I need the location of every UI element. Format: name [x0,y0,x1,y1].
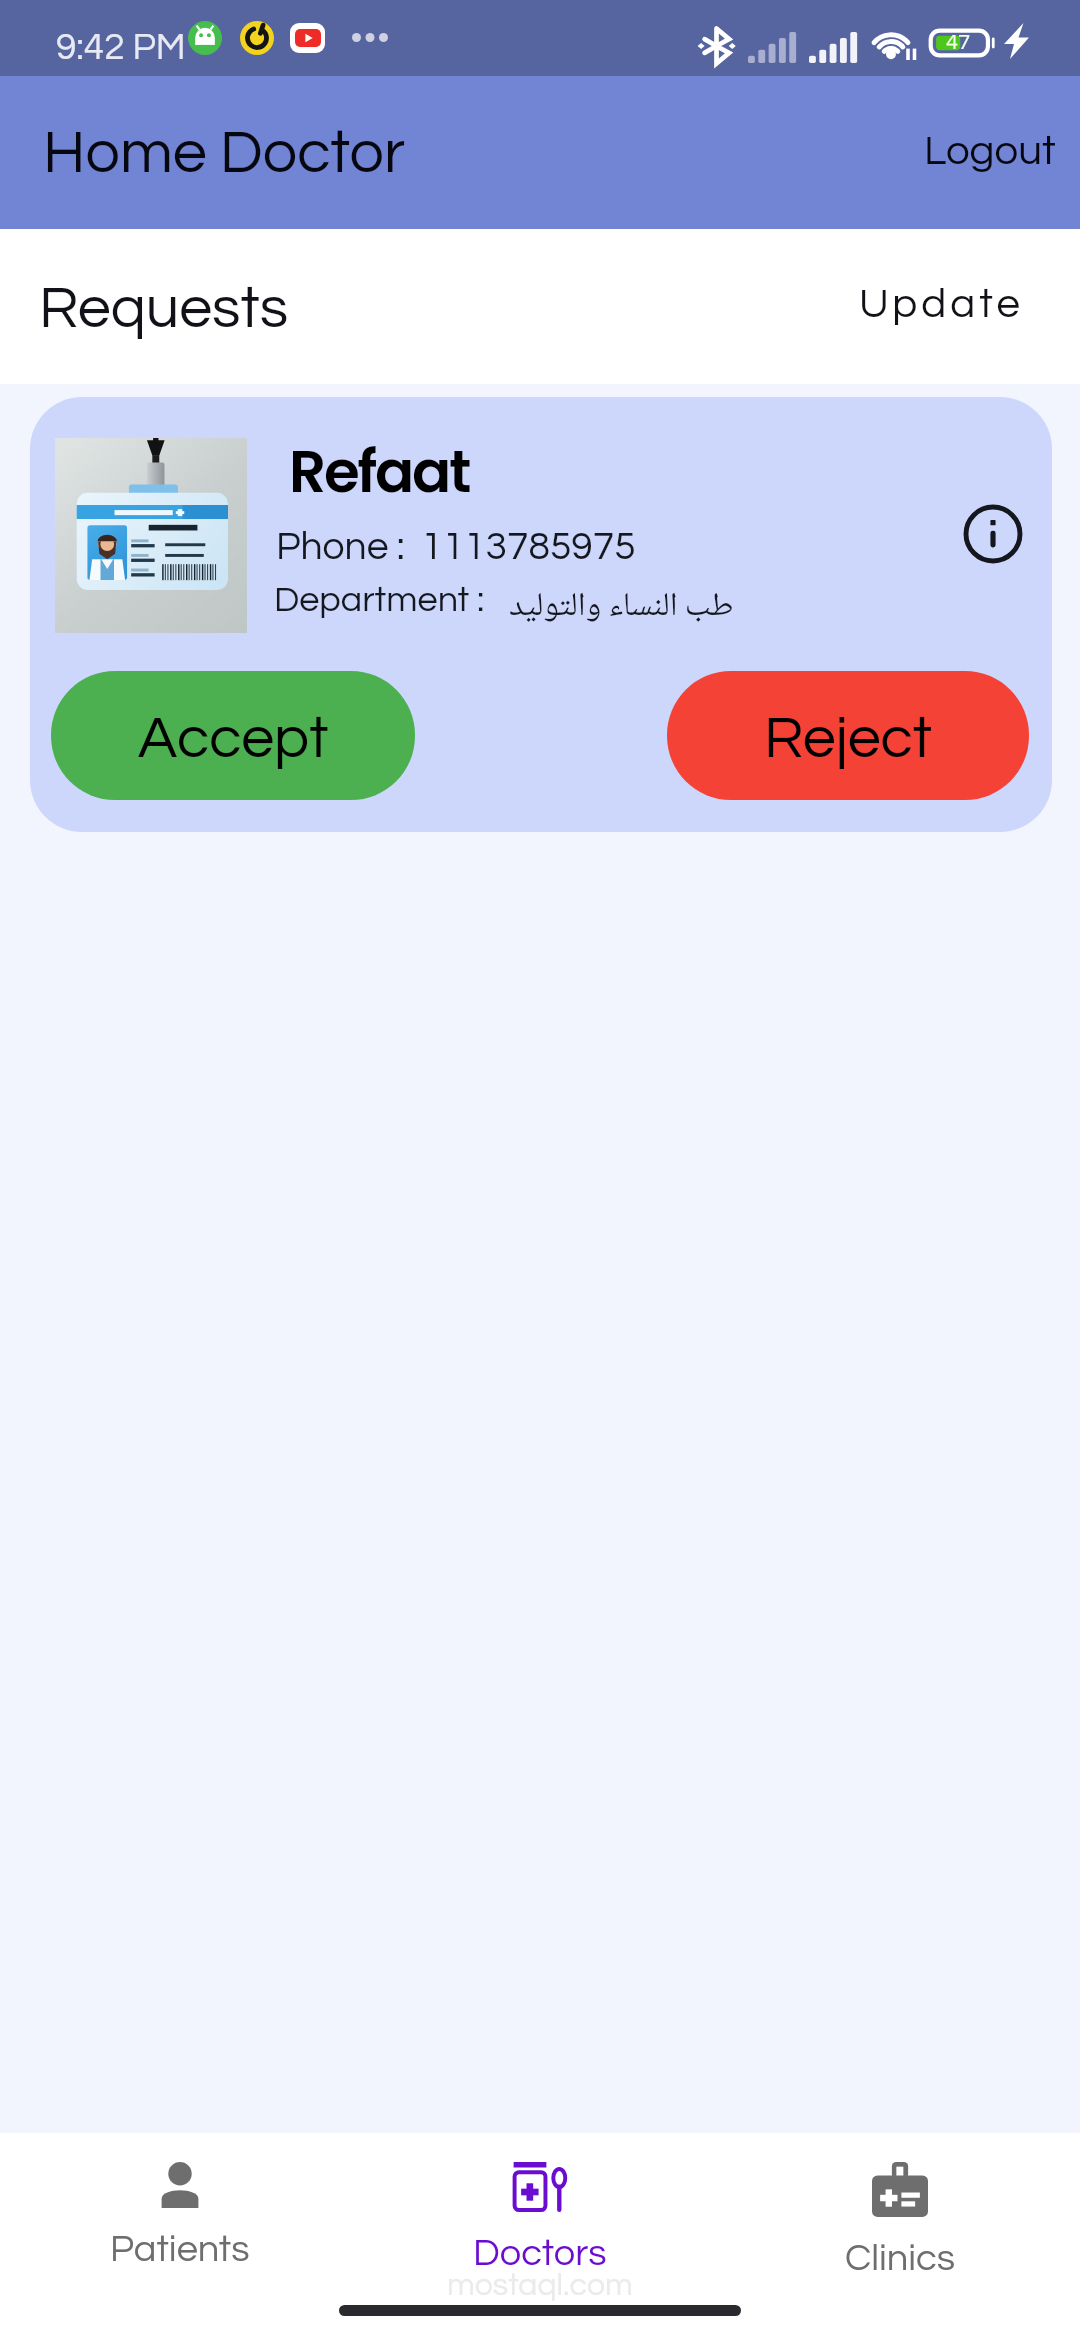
button[interactable]: Patients [0,2133,360,2269]
staticText: Phone : 1113785975 [276,527,636,567]
button[interactable]: Update [837,267,1046,342]
button[interactable]: Home Doctor [21,108,428,199]
staticText: 47 [946,31,971,54]
button[interactable]: Reject [667,671,1029,800]
staticText: Clinics [845,2239,956,2278]
staticText: Requests [39,279,289,340]
staticText: Logout [924,130,1056,173]
staticText: Patients [110,2230,250,2269]
button[interactable]: Doctors [360,2133,720,2273]
staticText: 9:42 PM [56,29,186,67]
staticText: Reject [764,709,932,770]
staticText: Doctors [473,2234,607,2273]
button[interactable]: Logout [902,116,1078,187]
button[interactable]: Accept [51,671,415,800]
button[interactable]: Refaat [30,397,1052,832]
staticText: mostaql.com [447,2269,633,2302]
button[interactable]: Info [960,501,1026,567]
staticText: طب النساء والتوليد [509,580,734,636]
staticText: Accept [138,709,329,770]
staticText: Home Doctor [43,122,406,185]
staticText: Department : [274,581,485,618]
button[interactable]: Clinics [720,2133,1080,2278]
staticText: Update [859,283,1024,326]
staticText: Refaat [289,431,470,512]
